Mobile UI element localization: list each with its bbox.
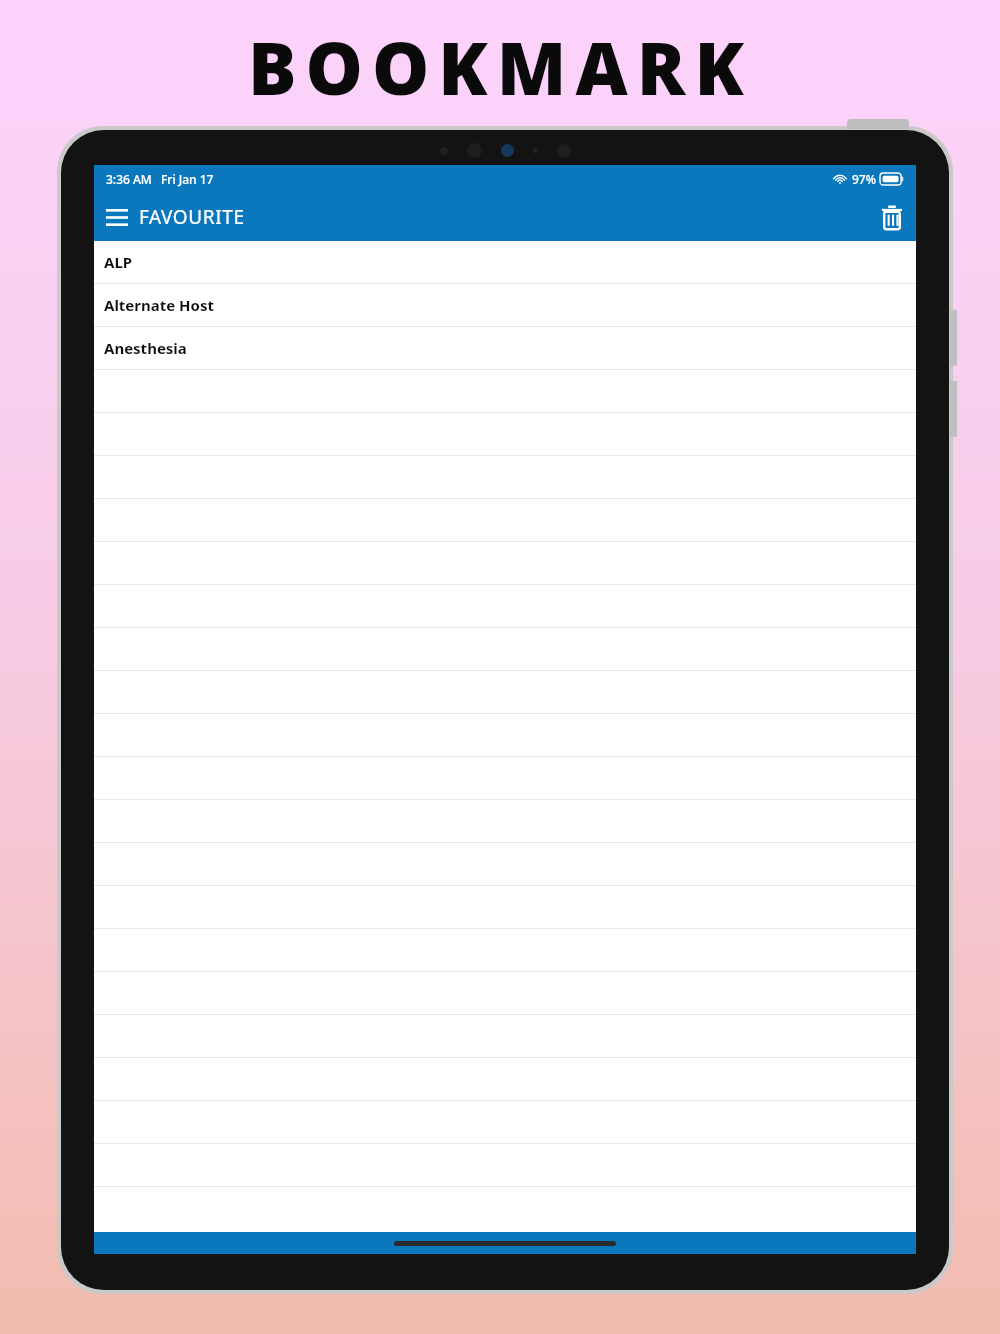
button[interactable] (94, 714, 916, 757)
staticText: 3:36 AM (106, 171, 152, 187)
button[interactable]: ALP (94, 241, 916, 284)
button[interactable] (94, 370, 916, 413)
button[interactable]: Delete all favourites (868, 197, 916, 238)
button[interactable] (94, 757, 916, 800)
button[interactable] (94, 1101, 916, 1144)
button[interactable] (94, 1015, 916, 1058)
staticText: 97% (852, 171, 876, 187)
button[interactable]: Open navigation menu (94, 198, 253, 236)
button[interactable] (94, 499, 916, 542)
button[interactable] (94, 800, 916, 843)
staticText: ALP (104, 252, 133, 272)
button[interactable]: Anesthesia (94, 327, 916, 370)
button[interactable] (94, 585, 916, 628)
button[interactable]: Alternate Host (94, 284, 916, 327)
button[interactable] (94, 628, 916, 671)
staticText: Fri Jan 17 (161, 171, 214, 187)
staticText: BOOKMARK (248, 18, 753, 116)
staticText: FAVOURITE (139, 204, 245, 230)
button[interactable] (94, 1144, 916, 1187)
staticText: Alternate Host (104, 295, 215, 315)
other: Open navigation menu (106, 209, 128, 226)
button[interactable] (94, 671, 916, 714)
button[interactable] (94, 886, 916, 929)
button[interactable] (94, 456, 916, 499)
button[interactable] (94, 929, 916, 972)
button[interactable] (94, 1058, 916, 1101)
button[interactable] (94, 843, 916, 886)
button[interactable] (94, 542, 916, 585)
button[interactable] (94, 413, 916, 456)
staticText: Anesthesia (104, 338, 187, 358)
button[interactable] (94, 972, 916, 1015)
